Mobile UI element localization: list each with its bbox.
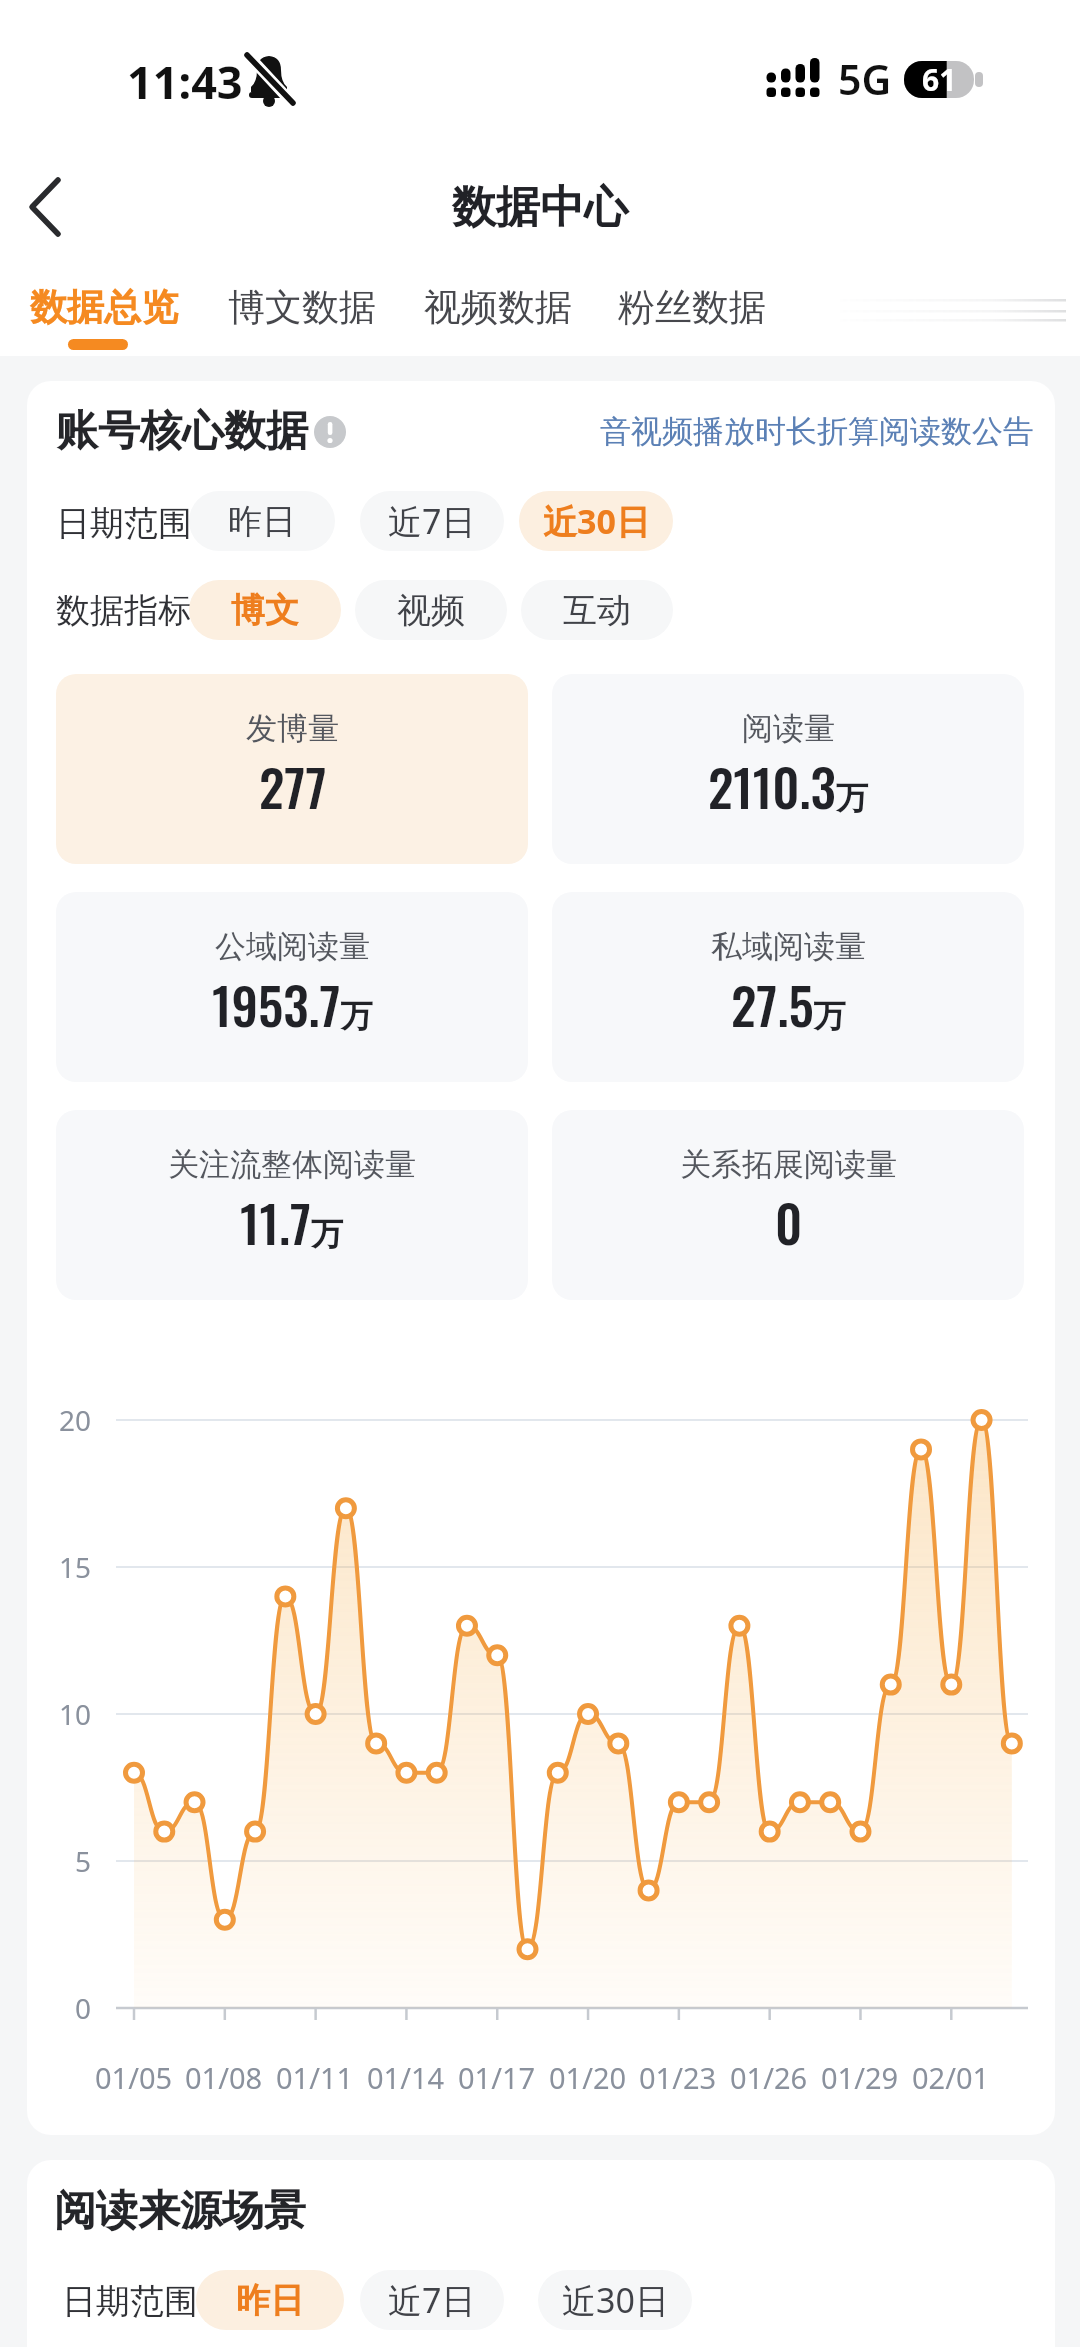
staticText: 视频 <box>397 589 465 632</box>
staticText: 数据中心 <box>452 180 628 235</box>
staticText: 2110.3万 <box>708 748 868 824</box>
staticText: 277 <box>259 748 327 824</box>
staticText: 15 <box>59 1548 92 1586</box>
staticText: 公域阅读量 <box>215 927 370 966</box>
button[interactable]: 博文数据 <box>228 278 376 336</box>
staticText: 互动 <box>563 589 631 632</box>
staticText: 数据指标 <box>56 589 192 632</box>
button[interactable]: 关系拓展阅读量 <box>552 1110 1024 1300</box>
staticText: 01/26 <box>730 2058 808 2097</box>
button[interactable]: 近7日 <box>360 2270 504 2330</box>
staticText: 01/17 <box>458 2058 536 2097</box>
staticText: 音视频播放时长折算阅读数公告 <box>600 412 1034 451</box>
button[interactable]: 音视频播放时长折算阅读数公告 <box>600 401 1034 461</box>
staticText: 近30日 <box>562 2277 669 2323</box>
button[interactable]: 近7日 <box>360 491 504 551</box>
staticText: 61 <box>922 59 957 100</box>
staticText: 01/11 <box>276 2058 354 2097</box>
staticText: 昨日 <box>228 500 296 543</box>
staticText: 博文数据 <box>228 284 376 331</box>
staticText: 01/08 <box>185 2058 263 2097</box>
staticText: 账号核心数据 <box>56 405 308 458</box>
staticText: 关系拓展阅读量 <box>680 1145 897 1184</box>
staticText: 0 <box>75 1989 92 2027</box>
button[interactable]: 昨日 <box>196 2270 344 2330</box>
button[interactable]: 公域阅读量 <box>56 892 528 1082</box>
button[interactable]: 关注流整体阅读量 <box>56 1110 528 1300</box>
staticText: 近7日 <box>388 2277 476 2323</box>
staticText: 20 <box>59 1401 92 1439</box>
staticText: 02/01 <box>912 2058 990 2097</box>
staticText: 1953.7万 <box>212 966 373 1042</box>
staticText: 数据总览 <box>30 284 178 331</box>
staticText: 阅读来源场景 <box>54 2185 306 2238</box>
button[interactable]: 视频 <box>355 580 507 640</box>
button[interactable]: 昨日 <box>189 491 335 551</box>
button[interactable]: 视频数据 <box>424 278 572 336</box>
staticText: 昨日 <box>236 2279 304 2322</box>
staticText: 11.7万 <box>240 1184 344 1260</box>
staticText: 5 <box>75 1842 92 1880</box>
button[interactable]: 博文 <box>189 580 341 640</box>
staticText: 阅读量 <box>742 709 835 748</box>
staticText: 近30日 <box>543 498 650 544</box>
staticText: 视频数据 <box>424 284 572 331</box>
staticText: 私域阅读量 <box>711 927 866 966</box>
staticText: 日期范围 <box>62 2280 198 2323</box>
staticText: 10 <box>59 1695 92 1733</box>
button[interactable]: 近30日 <box>519 491 673 551</box>
staticText: 发博量 <box>246 709 339 748</box>
staticText: 5G <box>838 51 892 107</box>
staticText: 博文 <box>231 589 299 632</box>
button[interactable]: 互动 <box>521 580 673 640</box>
staticText: 01/20 <box>549 2058 627 2097</box>
staticText: 粉丝数据 <box>618 284 766 331</box>
staticText: 日期范围 <box>56 502 192 545</box>
button[interactable] <box>18 172 78 242</box>
staticText: 11:43 <box>127 51 243 111</box>
button[interactable]: 粉丝数据 <box>618 278 766 336</box>
staticText: 01/05 <box>95 2058 173 2097</box>
button[interactable]: 发博量 <box>56 674 528 864</box>
button[interactable]: 近30日 <box>538 2270 692 2330</box>
staticText: 近7日 <box>388 498 476 544</box>
button[interactable]: 阅读量 <box>552 674 1024 864</box>
staticText: 01/29 <box>821 2058 899 2097</box>
staticText: 01/14 <box>367 2058 445 2097</box>
staticText: 27.5万 <box>731 966 846 1042</box>
staticText: 01/23 <box>639 2058 717 2097</box>
staticText: 0 <box>775 1184 803 1260</box>
staticText: 关注流整体阅读量 <box>168 1145 416 1184</box>
button[interactable]: 私域阅读量 <box>552 892 1024 1082</box>
button[interactable]: 数据总览 <box>30 278 178 336</box>
